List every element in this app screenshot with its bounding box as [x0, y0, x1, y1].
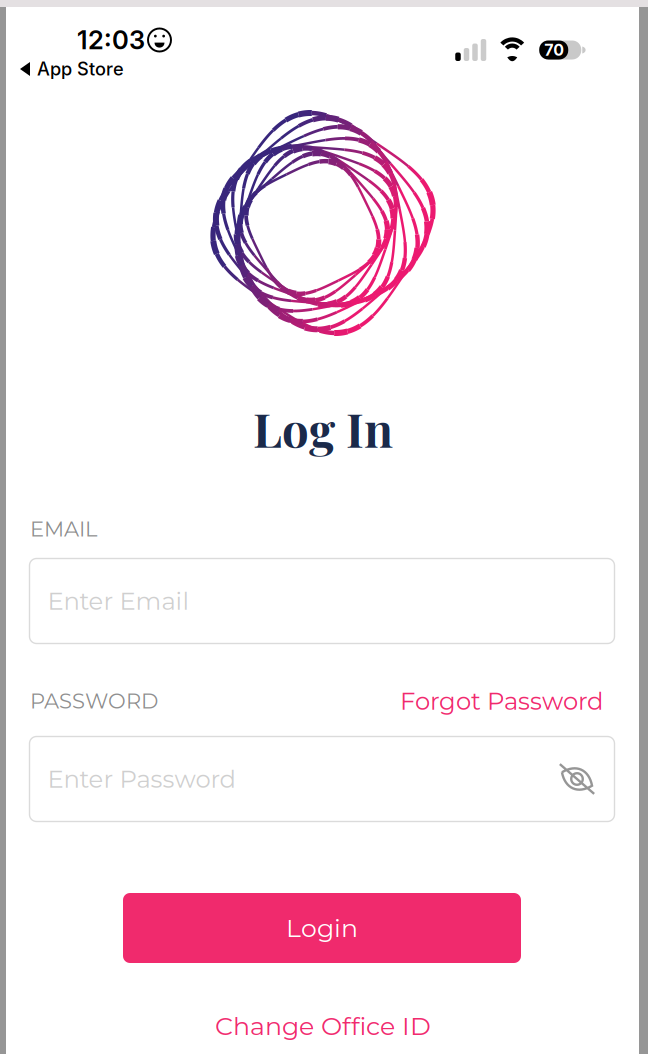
staticText: Enter Password	[47, 764, 235, 794]
staticText: 12:03	[77, 24, 145, 55]
staticText: Login	[286, 913, 358, 943]
staticText: Enter Email	[47, 586, 189, 616]
staticText: Log In	[253, 396, 393, 460]
staticText: Change Office ID	[215, 1011, 431, 1041]
button[interactable]: Change Office ID	[215, 1007, 431, 1045]
button[interactable]: Show password	[555, 762, 598, 796]
staticText: EMAIL	[30, 516, 97, 542]
staticText: Forgot Password	[400, 686, 603, 716]
staticText: PASSWORD	[30, 688, 158, 714]
staticText: 70	[544, 40, 564, 60]
staticText: App Store	[37, 58, 124, 80]
button[interactable]: Login	[123, 893, 521, 963]
button[interactable]: Forgot Password	[30, 682, 603, 720]
button[interactable]: Back to App Store	[20, 55, 124, 83]
